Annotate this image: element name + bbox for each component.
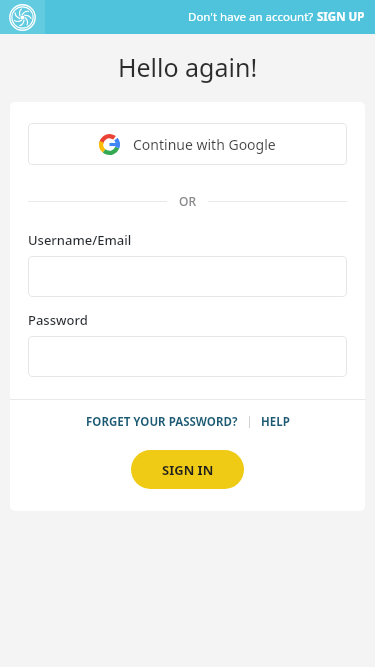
staticText: FORGET YOUR PASSWORD?	[86, 414, 238, 430]
staticText: OR	[179, 193, 196, 209]
button[interactable]: HELP	[261, 414, 290, 430]
staticText: SIGN UP	[317, 9, 365, 25]
button[interactable]: Username/Email	[28, 256, 347, 297]
staticText: HELP	[261, 414, 290, 430]
button[interactable]: Continue with Google	[28, 123, 347, 165]
staticText: Password	[28, 311, 88, 329]
staticText: Hello again!	[0, 50, 375, 84]
button[interactable]: SIGN UP	[317, 9, 365, 25]
button[interactable]: App logo	[9, 4, 36, 31]
staticText: SIGN IN	[162, 461, 214, 479]
button[interactable]: FORGET YOUR PASSWORD?	[86, 414, 238, 430]
button[interactable]: SIGN IN	[131, 450, 244, 489]
staticText: Don't have an account?	[188, 9, 317, 25]
staticText: Username/Email	[28, 231, 132, 249]
staticText: Continue with Google	[133, 135, 276, 154]
button[interactable]: Password	[28, 336, 347, 377]
